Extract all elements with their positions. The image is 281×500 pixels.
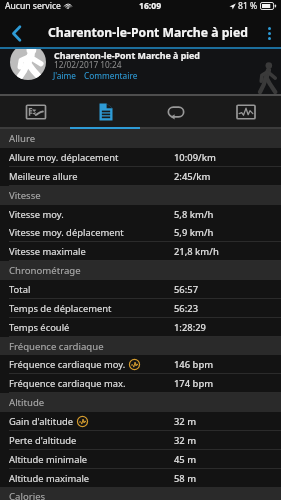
button[interactable]: Charts	[211, 96, 281, 127]
staticText: Temps écoulé	[9, 321, 70, 334]
staticText: 32 m	[174, 434, 197, 447]
staticText: 45 m	[174, 453, 197, 466]
staticText: Altitude maximale	[9, 472, 90, 485]
staticText: Fréquence cardiaque max.	[9, 377, 126, 390]
button[interactable]: Allure moy. déplacement	[0, 148, 281, 167]
staticText: Altitude minimale	[9, 453, 88, 466]
button[interactable]: Back	[0, 20, 32, 47]
staticText: Charenton-le-Pont Marche à pied	[54, 49, 200, 61]
button[interactable]: Laps	[141, 96, 211, 127]
button[interactable]: Map	[0, 96, 71, 127]
button[interactable]: Vitesse moy.	[0, 205, 281, 224]
staticText: Allure moy. déplacement	[9, 151, 119, 164]
button[interactable]: Perte d'altitude	[0, 431, 281, 450]
staticText: Vitesse moy.	[9, 208, 64, 221]
staticText: Vitesse maximale	[9, 245, 86, 258]
staticText: Meilleure allure	[9, 170, 78, 183]
staticText: Gain d'altitude	[9, 415, 74, 428]
staticText: Aucun service	[5, 0, 61, 12]
staticText: 174 bpm	[174, 377, 214, 390]
staticText: Temps de déplacement	[9, 302, 112, 315]
button[interactable]: Altitude minimale	[0, 450, 281, 469]
staticText: Fréquence cardiaque	[9, 340, 104, 353]
staticText: Fréquence cardiaque moy.	[9, 358, 126, 371]
staticText: Calories	[9, 490, 46, 500]
button[interactable]: Fréquence cardiaque max.	[0, 374, 281, 393]
button[interactable]: More options	[257, 20, 281, 47]
staticText: Total	[9, 283, 31, 296]
staticText: 5,9 km/h	[174, 226, 214, 239]
button[interactable]: Commentaire	[84, 70, 138, 81]
staticText: 12/02/2017 10:24	[54, 59, 122, 70]
staticText: Altitude	[9, 396, 45, 409]
button[interactable]: J'aime	[53, 70, 77, 81]
staticText: 56:23	[174, 302, 199, 315]
button[interactable]: Temps écoulé	[0, 318, 281, 337]
staticText: 16:09	[139, 0, 162, 12]
staticText: 58 m	[174, 472, 197, 485]
staticText: 32 m	[174, 415, 197, 428]
staticText: Vitesse moy. déplacement	[9, 226, 124, 239]
staticText: 2:45/km	[174, 170, 211, 183]
button[interactable]: Total	[0, 280, 281, 299]
button[interactable]: Vitesse maximale	[0, 242, 281, 261]
staticText: 10:09/km	[174, 151, 216, 164]
button[interactable]: Details	[71, 96, 141, 127]
staticText: 5,8 km/h	[174, 208, 214, 221]
staticText: Perte d'altitude	[9, 434, 77, 447]
staticText: 146 bpm	[174, 358, 214, 371]
staticText: Allure	[9, 132, 36, 145]
staticText: Charenton-le-Pont Marche à pied	[48, 24, 248, 41]
staticText: 81 %	[238, 0, 258, 12]
button[interactable]: Altitude maximale	[0, 469, 281, 488]
button[interactable]: Temps de déplacement	[0, 299, 281, 318]
staticText: 1:28:29	[174, 321, 206, 334]
button[interactable]: Meilleure allure	[0, 167, 281, 186]
staticText: 56:57	[174, 283, 199, 296]
button[interactable]: Gain d'altitude	[0, 412, 281, 431]
staticText: 21,8 km/h	[174, 245, 219, 258]
button[interactable]: Vitesse moy. déplacement	[0, 223, 281, 242]
button[interactable]: Fréquence cardiaque moy.	[0, 355, 281, 374]
staticText: Vitesse	[9, 189, 41, 202]
staticText: Chronométrage	[9, 264, 81, 277]
